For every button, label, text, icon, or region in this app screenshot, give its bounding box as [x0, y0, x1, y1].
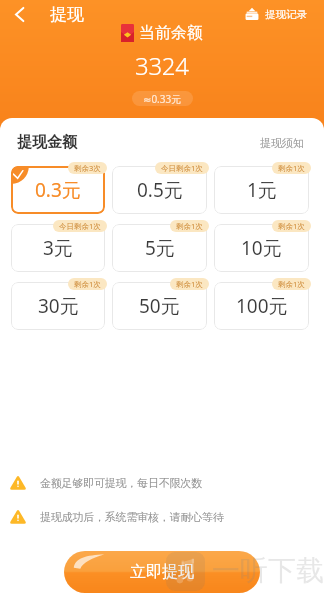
- button[interactable]: 1元: [214, 166, 309, 214]
- button[interactable]: Back: [5, 0, 33, 28]
- staticText: 3元: [43, 235, 73, 261]
- staticText: 一听下载: [212, 553, 324, 588]
- staticText: 3324: [135, 49, 189, 82]
- staticText: 今日剩余1次: [59, 221, 101, 231]
- staticText: 0.3元: [35, 177, 81, 203]
- button[interactable]: 50元: [112, 282, 207, 330]
- staticText: 今日剩余1次: [161, 163, 203, 173]
- button[interactable]: 30元: [11, 282, 105, 330]
- staticText: 100元: [236, 293, 288, 319]
- staticText: 提现须知: [260, 136, 304, 150]
- button[interactable]: 提现须知: [260, 136, 304, 150]
- staticText: 提现记录: [265, 8, 307, 21]
- staticText: 金额足够即可提现，每日不限次数: [40, 476, 202, 490]
- button[interactable]: 立即提现: [64, 551, 260, 593]
- button[interactable]: 3元: [11, 224, 105, 272]
- button[interactable]: 0.3元: [11, 166, 105, 214]
- staticText: 提现金额: [17, 133, 77, 152]
- staticText: 立即提现: [130, 562, 194, 582]
- staticText: 剩余3次: [74, 163, 101, 173]
- staticText: 提现: [50, 4, 84, 25]
- staticText: 1元: [247, 177, 277, 203]
- button[interactable]: 提现记录: [245, 7, 307, 21]
- staticText: 剩余1次: [74, 279, 101, 289]
- staticText: 剩余1次: [176, 221, 203, 231]
- staticText: 提现成功后，系统需审核，请耐心等待: [40, 510, 224, 524]
- staticText: 10元: [241, 235, 282, 261]
- staticText: 0.5元: [137, 177, 183, 203]
- button[interactable]: 10元: [214, 224, 309, 272]
- staticText: 剩余1次: [278, 221, 305, 231]
- staticText: 剩余1次: [278, 279, 305, 289]
- staticText: 剩余1次: [278, 163, 305, 173]
- button[interactable]: 0.5元: [112, 166, 207, 214]
- button[interactable]: 100元: [214, 282, 309, 330]
- staticText: 30元: [38, 293, 79, 319]
- staticText: 剩余1次: [176, 279, 203, 289]
- button[interactable]: 5元: [112, 224, 207, 272]
- staticText: ≈0.33元: [143, 92, 182, 106]
- staticText: 当前余额: [139, 23, 203, 43]
- staticText: 5元: [145, 235, 175, 261]
- staticText: 50元: [139, 293, 180, 319]
